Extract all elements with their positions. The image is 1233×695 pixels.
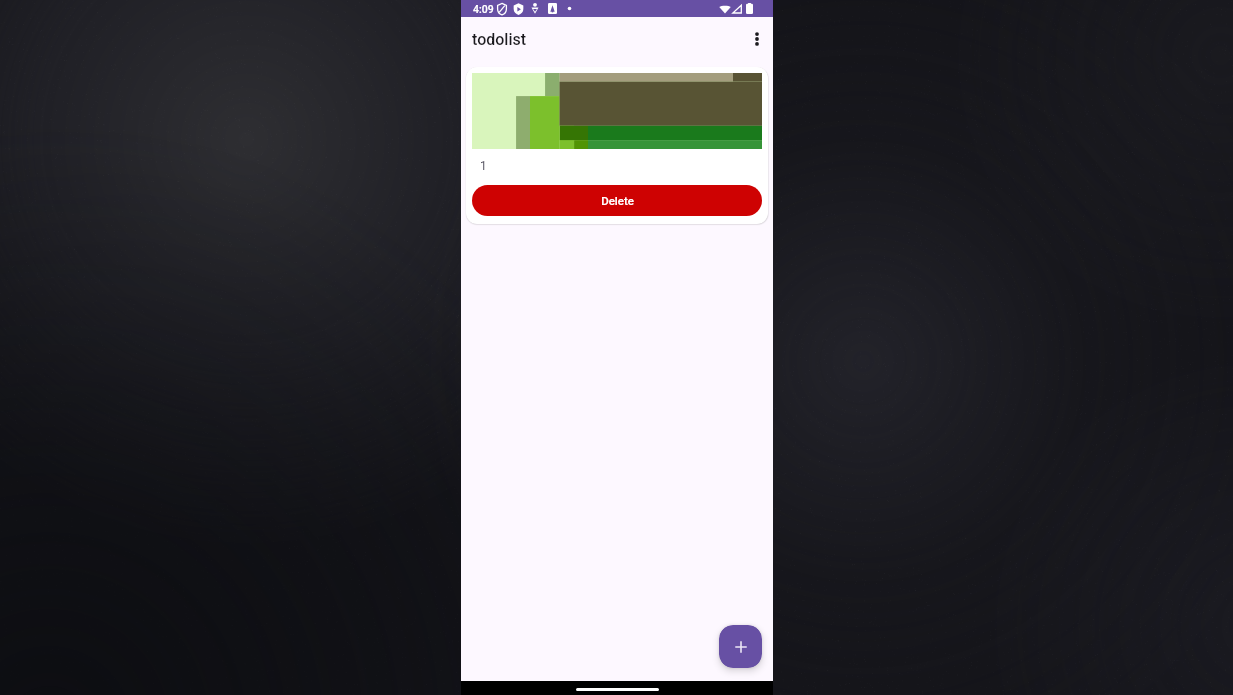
other: Todo photo bbox=[472, 73, 762, 149]
button[interactable]: Add bbox=[719, 625, 762, 668]
button[interactable]: More options bbox=[742, 24, 772, 54]
button[interactable]: Delete bbox=[472, 185, 762, 216]
button[interactable]: Todo photo bbox=[466, 67, 768, 224]
staticText: todolist bbox=[472, 30, 527, 49]
staticText: Delete bbox=[601, 194, 634, 207]
staticText: 1 bbox=[480, 159, 487, 173]
staticText: 4:09 bbox=[473, 3, 494, 15]
